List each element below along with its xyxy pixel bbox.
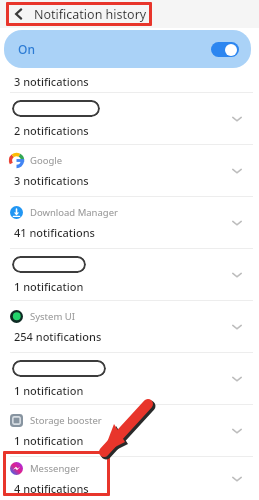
- button[interactable]: Expand: [227, 317, 247, 337]
- staticText: 41 notifications: [14, 225, 95, 240]
- button[interactable]: Expand: [227, 109, 247, 129]
- staticText: 2 notifications: [14, 123, 89, 138]
- staticText: 3 notifications: [14, 74, 89, 89]
- button[interactable]: Back: [8, 3, 30, 25]
- button[interactable]: Expand: [227, 421, 247, 441]
- staticText: 3 notifications: [14, 173, 89, 188]
- button[interactable]: Storage booster: [0, 405, 259, 456]
- staticText: 4 notifications: [14, 481, 89, 496]
- staticText: Download Manager: [30, 206, 118, 219]
- button[interactable]: Google: [0, 145, 259, 196]
- button[interactable]: Expand: [227, 161, 247, 181]
- staticText: Google: [30, 154, 63, 167]
- button[interactable]: Messenger: [0, 457, 259, 500]
- button[interactable]: Expand: [227, 469, 247, 489]
- button[interactable]: System UI: [0, 301, 259, 352]
- staticText: Storage booster: [30, 414, 102, 427]
- staticText: 254 notifications: [14, 329, 102, 344]
- button[interactable]: 1 notification: [0, 249, 259, 300]
- staticText: 1 notification: [14, 383, 84, 398]
- staticText: 1 notification: [14, 433, 84, 448]
- staticText: System UI: [30, 310, 75, 323]
- button[interactable]: Expand: [227, 369, 247, 389]
- button[interactable]: 2 notifications: [0, 93, 259, 144]
- button[interactable]: Download Manager: [0, 197, 259, 248]
- button[interactable]: 1 notification: [0, 353, 259, 404]
- staticText: On: [18, 41, 35, 57]
- staticText: Notification history: [34, 6, 147, 23]
- button[interactable]: On: [4, 30, 251, 68]
- staticText: 1 notification: [14, 279, 84, 294]
- button[interactable]: Expand: [227, 213, 247, 233]
- staticText: Messenger: [30, 462, 80, 475]
- button[interactable]: Expand: [227, 265, 247, 285]
- button[interactable]: 3 notifications: [0, 70, 259, 92]
